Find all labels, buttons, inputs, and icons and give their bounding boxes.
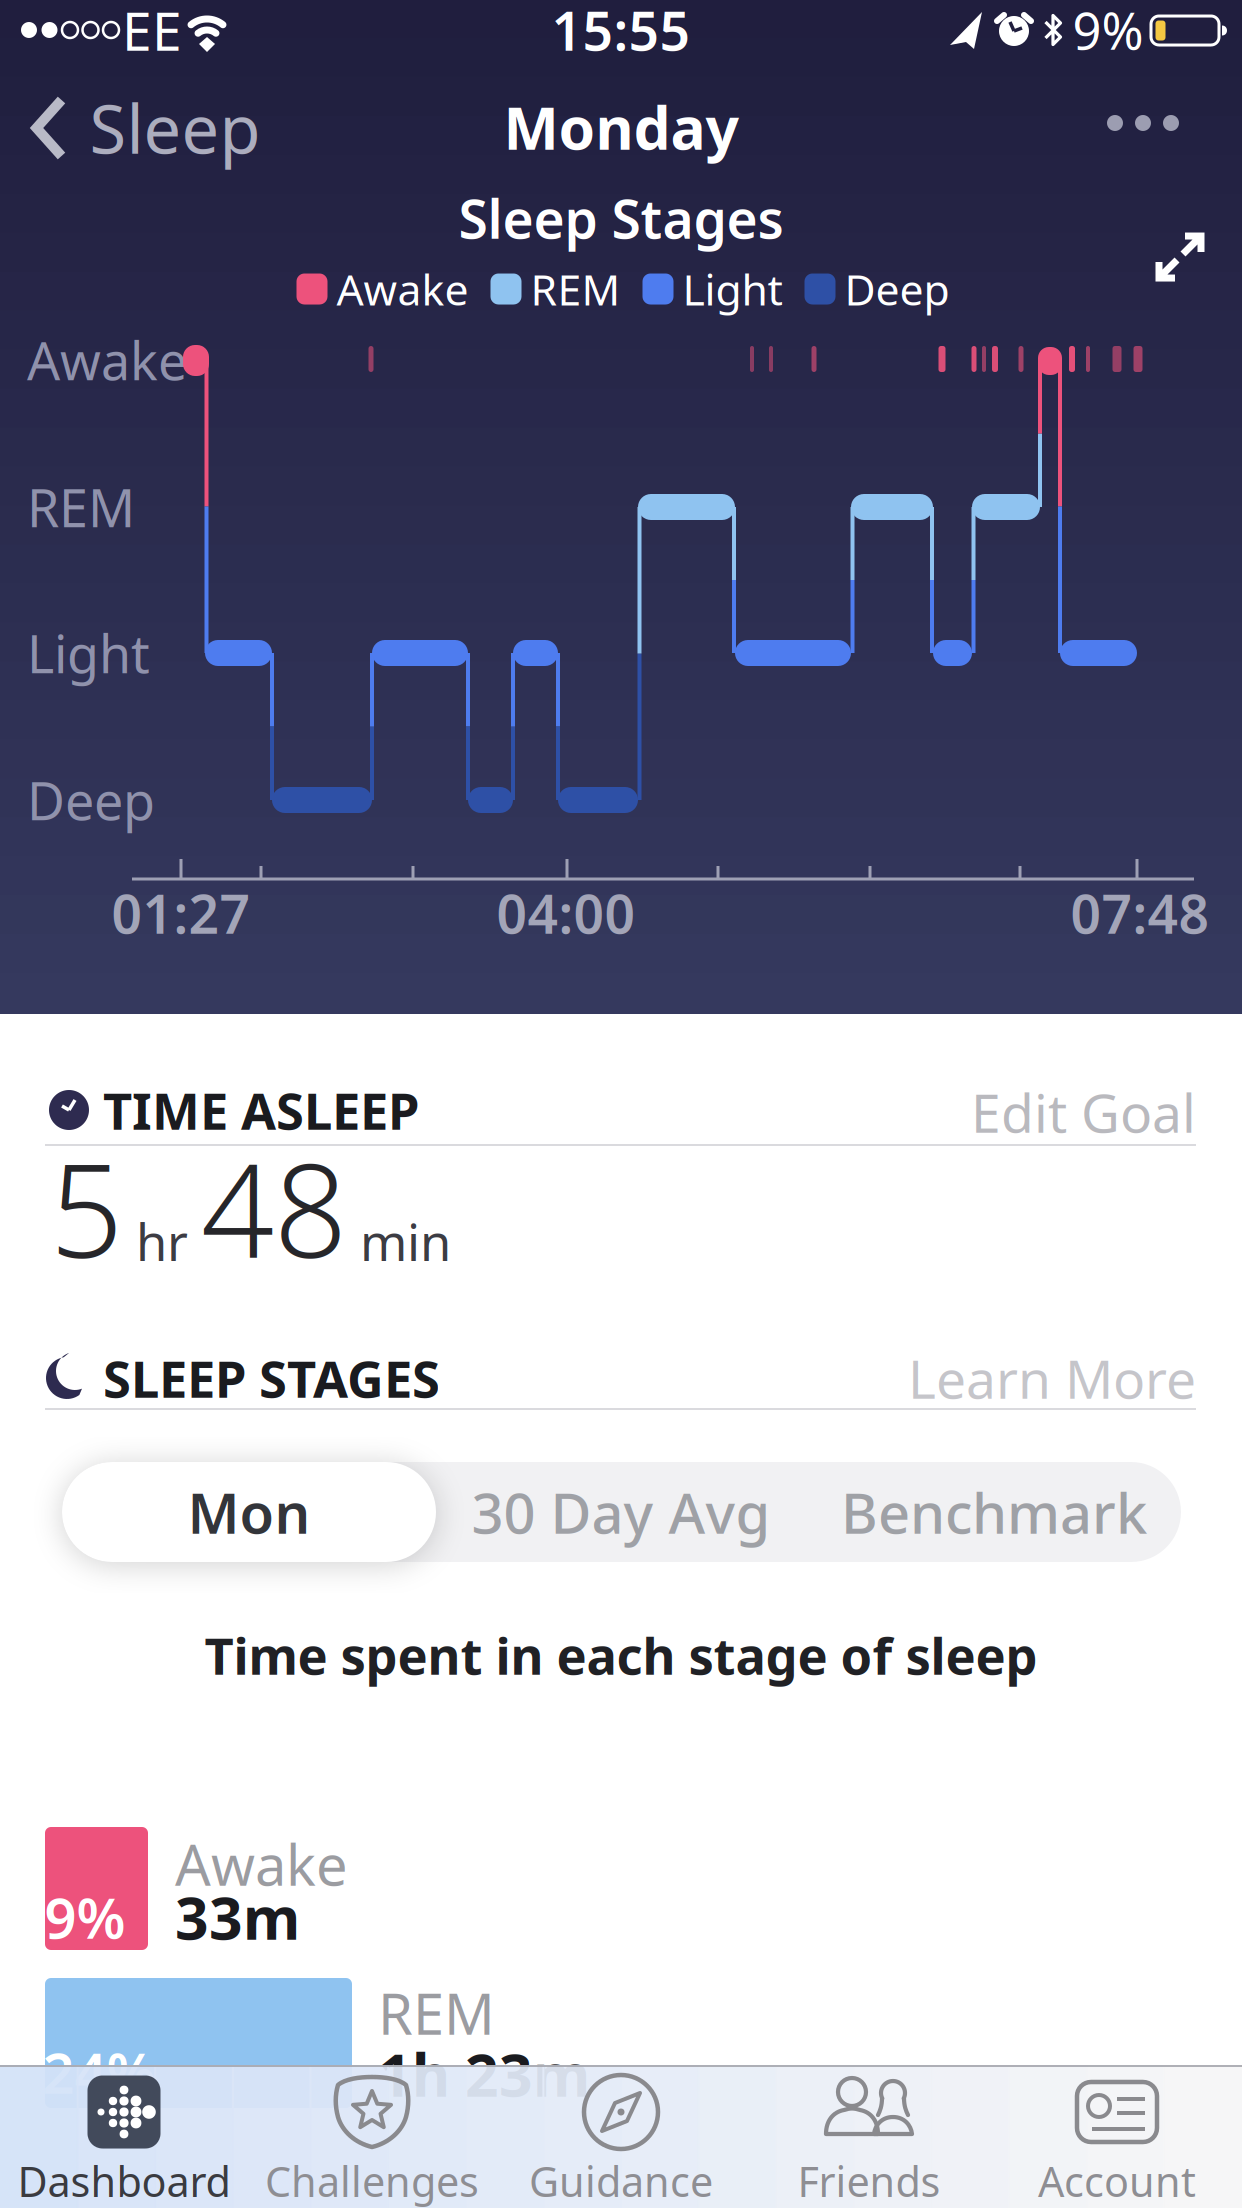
staticText: REM <box>530 261 620 317</box>
staticText: EE <box>122 0 182 65</box>
staticText: Deep <box>27 765 155 835</box>
staticText: Mon <box>187 1475 310 1549</box>
staticText: 01:27 <box>111 878 250 948</box>
button[interactable]: Friends <box>719 2068 1019 2208</box>
staticText: Monday <box>503 88 738 166</box>
staticText: Edit Goal <box>971 1077 1196 1147</box>
button[interactable]: Back to Sleep <box>31 84 260 172</box>
staticText: Account <box>1038 2154 1196 2208</box>
staticText: Friends <box>797 2154 940 2208</box>
staticText: 04:00 <box>496 878 635 948</box>
staticText: Guidance <box>529 2154 713 2208</box>
button[interactable]: Dashboard <box>0 2068 274 2208</box>
button[interactable]: Expand chart <box>1150 227 1210 287</box>
staticText: 5 <box>50 1123 123 1293</box>
staticText: Light <box>682 261 782 317</box>
staticText: 30 Day Avg <box>471 1475 770 1549</box>
staticText: 9% <box>1072 0 1143 64</box>
button[interactable]: More options <box>1107 115 1179 131</box>
staticText: Deep <box>844 261 949 317</box>
staticText: REM <box>27 472 135 542</box>
button[interactable]: Challenges <box>222 2068 522 2208</box>
staticText: 07:48 <box>1070 878 1209 948</box>
button[interactable]: Guidance <box>471 2068 771 2208</box>
staticText: Light <box>27 618 150 688</box>
button[interactable]: Benchmark <box>807 1462 1180 1562</box>
staticText: Sleep <box>89 84 260 172</box>
button[interactable]: 30 Day Avg <box>434 1462 807 1562</box>
staticText: Awake <box>27 325 187 395</box>
staticText: Learn More <box>908 1343 1196 1413</box>
staticText: Dashboard <box>17 2154 230 2208</box>
staticText: Sleep Stages <box>458 183 783 253</box>
staticText: TIME ASLEEP <box>103 1076 419 1144</box>
staticText: REM <box>378 1976 495 2050</box>
staticText: Awake <box>175 1827 348 1901</box>
staticText: 48 <box>201 1123 347 1293</box>
button[interactable]: Mon <box>62 1462 436 1562</box>
staticText: Challenges <box>265 2154 479 2208</box>
staticText: Awake <box>336 261 468 317</box>
staticText: Benchmark <box>841 1475 1147 1549</box>
staticText: min <box>360 1208 451 1275</box>
staticText: hr <box>136 1208 188 1275</box>
staticText: 15:55 <box>551 0 690 65</box>
staticText: 9% <box>44 1880 125 1954</box>
staticText: 1h 23m <box>378 2035 590 2113</box>
staticText: SLEEP STAGES <box>103 1344 440 1412</box>
staticText: Time spent in each stage of sleep <box>204 1621 1037 1689</box>
button[interactable]: Edit Goal <box>796 1077 1196 1147</box>
button[interactable]: Learn More <box>796 1343 1196 1413</box>
button[interactable]: Account <box>967 2068 1242 2208</box>
staticText: 24% <box>42 2035 155 2109</box>
staticText: 33m <box>175 1878 300 1956</box>
